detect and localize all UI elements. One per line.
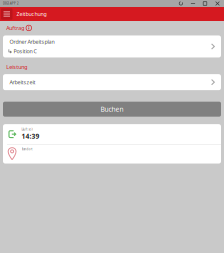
staticText: Leistung — [6, 63, 27, 71]
staticText: Position C — [13, 48, 36, 55]
staticText: Auftrag — [6, 24, 24, 31]
staticText: Läuft seit — [21, 128, 33, 131]
staticText: Buchen — [100, 105, 123, 114]
button[interactable]: Buchen — [3, 102, 221, 117]
staticText: Standort — [22, 148, 33, 151]
staticText: Zeitbuchung — [16, 10, 46, 18]
button[interactable]: Restore window — [175, 0, 187, 7]
staticText: Arbeitszeit — [10, 79, 36, 86]
button[interactable]: Ordner Arbeitsplan — [3, 35, 221, 57]
button[interactable]: Arbeitszeit — [3, 74, 221, 90]
button[interactable]: Maximize — [199, 0, 211, 7]
staticText: DIGI-APP 2 — [3, 2, 19, 5]
button[interactable]: Minimize — [187, 0, 199, 7]
staticText: 14:39 — [21, 132, 39, 141]
button[interactable]: Menu — [1, 8, 12, 20]
staticText: Ordner Arbeitsplan — [10, 38, 55, 45]
button[interactable]: Close — [211, 0, 224, 7]
